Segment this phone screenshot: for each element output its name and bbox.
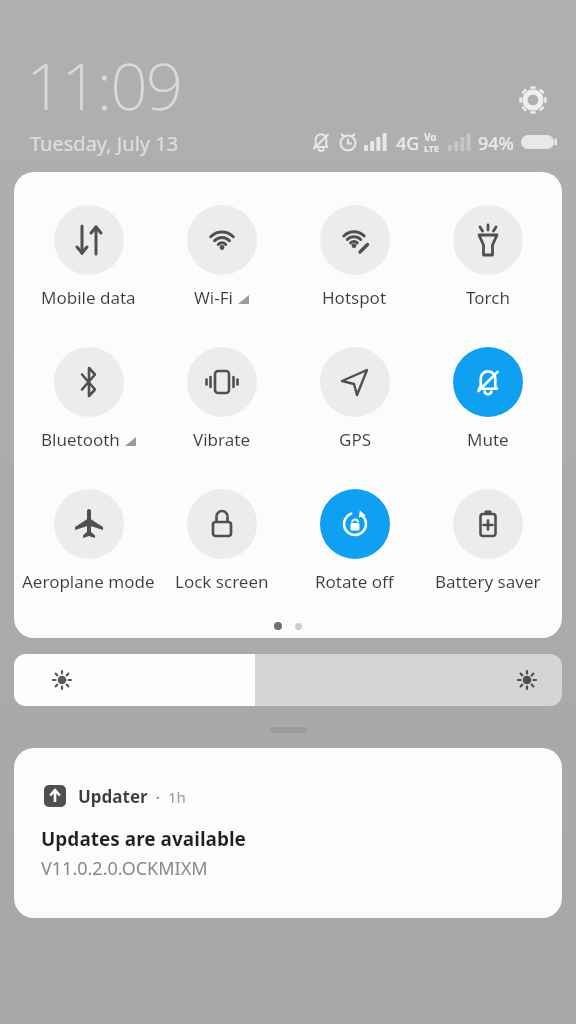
- button[interactable]: [14, 654, 562, 706]
- staticText: Updater: [78, 785, 148, 808]
- staticText: ·: [148, 787, 168, 807]
- staticText: Vibrate: [193, 428, 250, 451]
- staticText: 1h: [168, 787, 186, 807]
- button[interactable]: [320, 347, 390, 417]
- staticText: Wi-Fi: [194, 286, 233, 309]
- staticText: Vo: [424, 130, 437, 144]
- button[interactable]: [453, 205, 523, 275]
- button[interactable]: [320, 489, 390, 559]
- staticText: 11:09: [26, 41, 182, 130]
- button[interactable]: [187, 489, 257, 559]
- staticText: V11.0.2.0.OCKMIXM: [41, 856, 208, 881]
- button[interactable]: Updater: [14, 748, 562, 918]
- button[interactable]: [453, 489, 523, 559]
- staticText: Updates are available: [41, 826, 246, 852]
- button[interactable]: [187, 347, 257, 417]
- button[interactable]: [54, 205, 124, 275]
- button[interactable]: [187, 205, 257, 275]
- staticText: 94%: [478, 131, 514, 156]
- staticText: Lock screen: [175, 570, 269, 593]
- staticText: Torch: [466, 286, 510, 309]
- staticText: Tuesday, July 13: [30, 130, 179, 157]
- staticText: 4G: [396, 131, 420, 156]
- staticText: Mobile data: [41, 286, 136, 309]
- staticText: LTE: [424, 142, 440, 154]
- staticText: GPS: [339, 428, 371, 451]
- staticText: Rotate off: [315, 570, 394, 593]
- button[interactable]: [54, 489, 124, 559]
- button[interactable]: [453, 347, 523, 417]
- button[interactable]: [54, 347, 124, 417]
- button[interactable]: [505, 72, 561, 128]
- button[interactable]: [320, 205, 390, 275]
- staticText: Mute: [467, 428, 509, 451]
- staticText: Battery saver: [435, 570, 541, 593]
- staticText: Aeroplane mode: [22, 570, 155, 593]
- staticText: Bluetooth: [41, 428, 120, 451]
- staticText: Hotspot: [322, 286, 387, 309]
